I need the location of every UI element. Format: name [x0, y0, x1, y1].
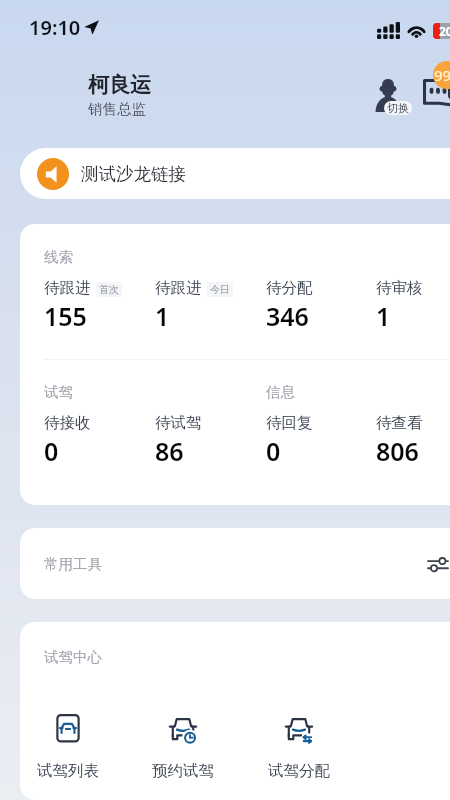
staticText: 待接收 [44, 413, 91, 433]
staticText: 806 [376, 434, 419, 468]
staticText: 待跟进 [155, 278, 202, 298]
staticText: 今日 [210, 283, 230, 296]
button[interactable]: 待审核 [376, 278, 450, 333]
staticText: 待分配 [266, 278, 313, 298]
staticText: 销售总监 [88, 100, 146, 118]
staticText: 0 [266, 434, 281, 468]
staticText: 99+ [434, 65, 450, 85]
staticText: 切换 [387, 101, 409, 115]
staticText: 试驾中心 [44, 648, 102, 666]
button[interactable]: 待查看 [376, 413, 450, 468]
staticText: 待审核 [376, 278, 423, 298]
staticText: 0 [44, 434, 59, 468]
staticText: 346 [266, 299, 309, 333]
staticText: 试驾 [44, 383, 266, 401]
staticText: 信息 [266, 383, 295, 401]
staticText: 1 [376, 299, 391, 333]
button[interactable]: 待分配 [266, 278, 376, 333]
button[interactable]: 消息 [420, 56, 450, 108]
staticText: 19:10 [29, 14, 81, 41]
staticText: 待回复 [266, 413, 313, 433]
staticText: 待查看 [376, 413, 423, 433]
button[interactable]: 试驾分配 [263, 714, 335, 781]
staticText: 待跟进 [44, 278, 91, 298]
staticText: 试驾列表 [37, 761, 99, 781]
button[interactable]: 预约试驾 [147, 714, 219, 781]
button[interactable]: 切换账号 [373, 76, 413, 114]
staticText: 线索 [44, 248, 73, 266]
button[interactable]: 测试沙龙链接 [20, 148, 450, 199]
staticText: 1 [155, 299, 170, 333]
staticText: 86 [155, 434, 184, 468]
button[interactable]: 待跟进 [44, 278, 155, 333]
staticText: 首次 [99, 283, 119, 296]
staticText: 常用工具 [44, 555, 102, 573]
button[interactable]: 设置 [419, 545, 450, 583]
staticText: 155 [44, 299, 87, 333]
staticText: 柯良运 [88, 72, 151, 98]
button[interactable]: 待回复 [266, 413, 376, 468]
staticText: 待试驾 [155, 413, 202, 433]
button[interactable]: 试驾列表 [32, 714, 104, 781]
staticText: 测试沙龙链接 [81, 163, 186, 185]
button[interactable]: 待接收 [44, 413, 155, 468]
button[interactable]: 待跟进 [155, 278, 266, 333]
staticText: 预约试驾 [152, 761, 214, 781]
staticText: 20 [439, 23, 450, 39]
staticText: 试驾分配 [268, 761, 330, 781]
button[interactable]: 待试驾 [155, 413, 266, 468]
